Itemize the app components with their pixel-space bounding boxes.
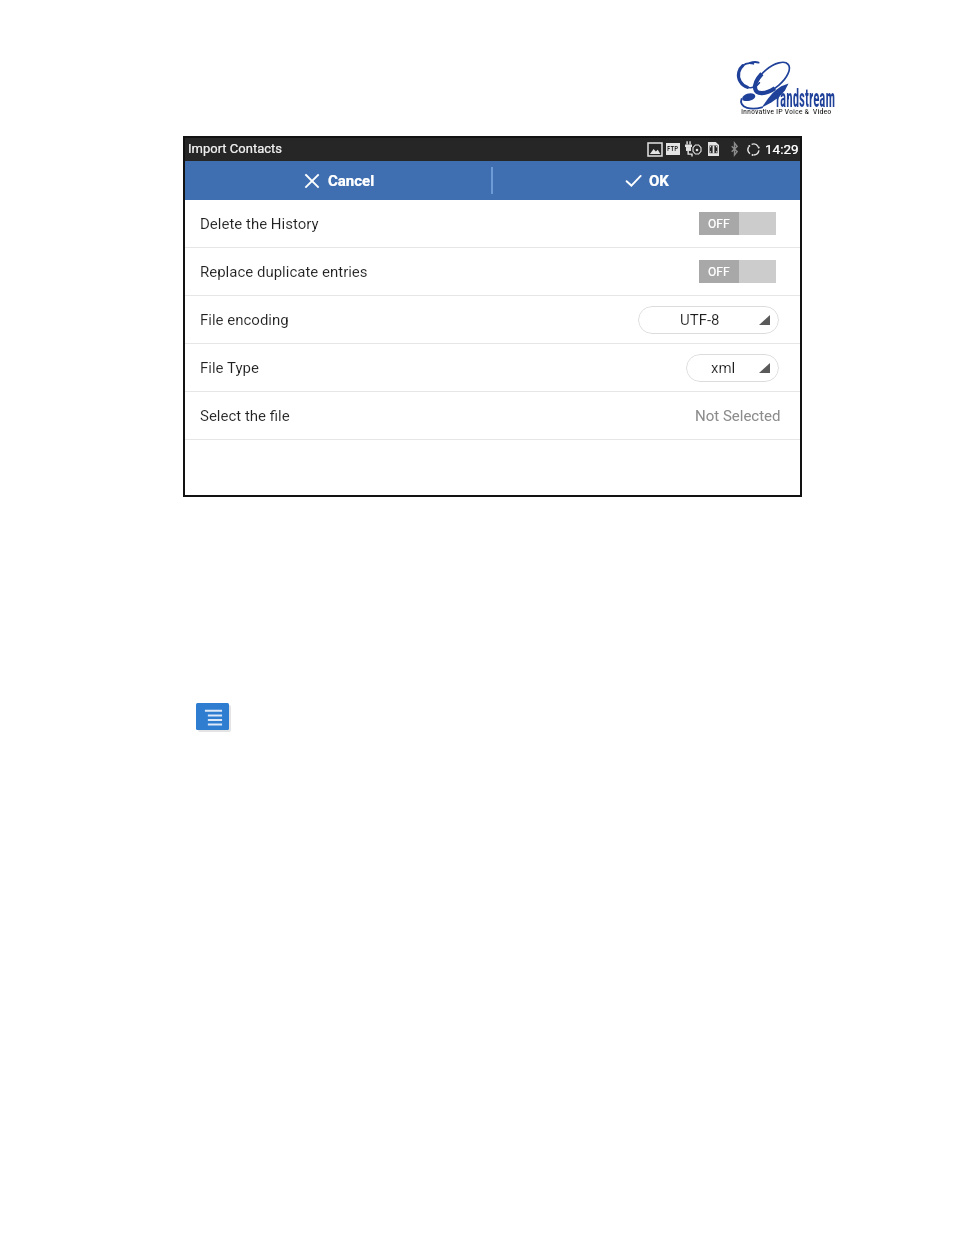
button[interactable]: UTF-8	[638, 306, 779, 334]
staticText: OFF	[708, 217, 730, 231]
staticText: File encoding	[200, 311, 289, 329]
staticText: FTP	[667, 145, 679, 153]
button[interactable]: Delete the History	[183, 200, 802, 247]
staticText: randstream	[776, 84, 835, 113]
button[interactable]: File Type	[183, 344, 802, 391]
button[interactable]: Replace duplicate entries	[183, 248, 802, 295]
staticText: Innovative IP Voice & Video	[741, 108, 831, 116]
staticText: UTF-8	[680, 311, 720, 329]
button[interactable]: xml	[686, 354, 779, 382]
button[interactable]: OK	[493, 161, 802, 200]
staticText: Not Selected	[695, 407, 781, 425]
staticText: Replace duplicate entries	[200, 263, 368, 281]
staticText: Import Contacts	[188, 141, 282, 156]
button[interactable]: Cancel	[183, 161, 491, 200]
button[interactable]: File encoding	[183, 296, 802, 343]
staticText: 14:29	[765, 141, 799, 157]
staticText: Cancel	[328, 172, 375, 190]
button[interactable]: Select the file	[183, 392, 802, 439]
button[interactable]: Toggle off	[699, 212, 776, 235]
staticText: File Type	[200, 359, 259, 377]
staticText: xml	[711, 359, 736, 377]
button[interactable]: Toggle off	[699, 260, 776, 283]
button[interactable]: Menu	[196, 703, 229, 730]
staticText: Delete the History	[200, 215, 319, 233]
staticText: OFF	[708, 265, 730, 279]
staticText: Select the file	[200, 407, 290, 425]
staticText: OK	[649, 172, 669, 190]
